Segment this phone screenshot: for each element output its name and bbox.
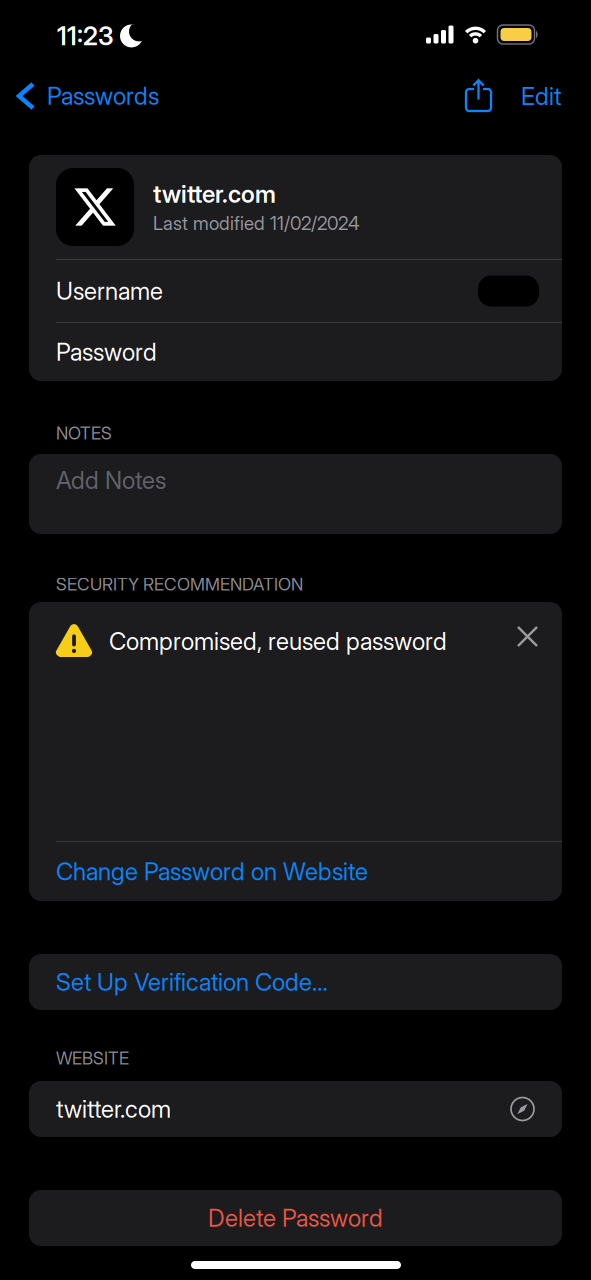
button[interactable]: Username — [29, 260, 562, 322]
button[interactable]: Set Up Verification Code… — [29, 954, 562, 1010]
button[interactable]: Edit — [521, 82, 561, 110]
staticText: Set Up Verification Code… — [56, 968, 328, 996]
staticText: Passwords — [47, 82, 159, 110]
staticText: Password — [56, 338, 157, 366]
button[interactable]: Change Password on Website — [29, 842, 562, 901]
button[interactable]: Password — [29, 323, 562, 381]
staticText: SECURITY RECOMMENDATION — [56, 574, 303, 594]
button[interactable]: Dismiss — [517, 626, 538, 647]
staticText: twitter.com — [56, 1095, 171, 1123]
staticText: Compromised, reused password — [109, 627, 447, 655]
button[interactable]: Passwords — [15, 81, 159, 111]
staticText: Username — [56, 277, 163, 305]
button[interactable]: Add Notes — [29, 454, 562, 534]
staticText: Change Password on Website — [56, 857, 368, 886]
staticText: WEBSITE — [56, 1048, 129, 1068]
staticText: Add Notes — [56, 466, 166, 494]
staticText: Edit — [521, 82, 561, 110]
staticText: Delete Password — [208, 1204, 383, 1232]
button[interactable]: Delete Password — [29, 1190, 562, 1246]
button[interactable]: Share — [466, 79, 491, 111]
staticText: Last modified 11/02/2024 — [153, 212, 360, 234]
staticText: twitter.com — [153, 180, 276, 208]
button[interactable]: twitter.com — [29, 1081, 562, 1137]
staticText: NOTES — [56, 423, 112, 443]
staticText: 11:23 — [57, 21, 114, 51]
